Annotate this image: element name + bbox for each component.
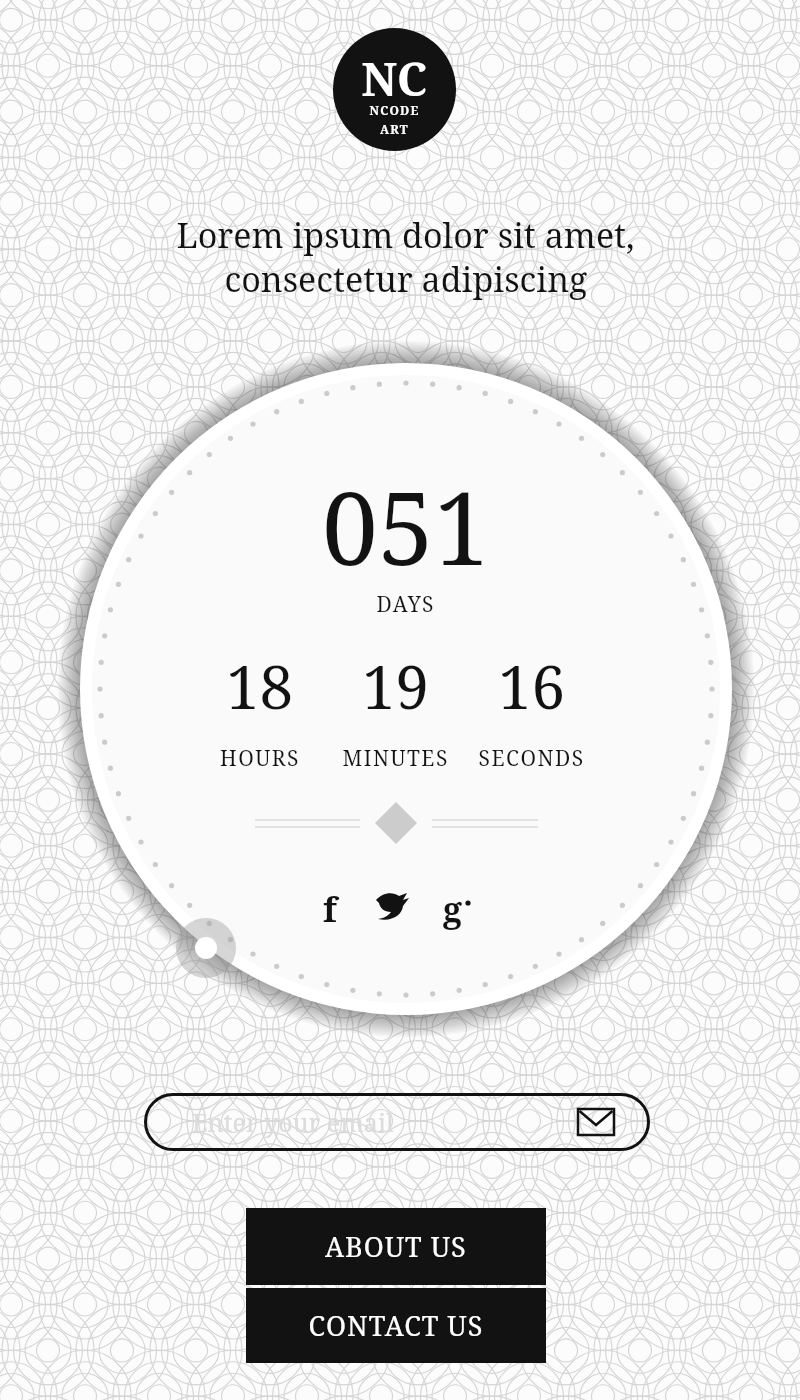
button[interactable]: Enter your email — [144, 1093, 650, 1151]
button[interactable] — [246, 1288, 546, 1363]
button[interactable]: Facebook — [306, 884, 354, 932]
button[interactable] — [246, 1208, 546, 1285]
button[interactable]: NCODE ART logo — [333, 28, 456, 151]
button[interactable]: Twitter — [368, 884, 416, 932]
button[interactable]: Google Plus — [431, 884, 479, 932]
